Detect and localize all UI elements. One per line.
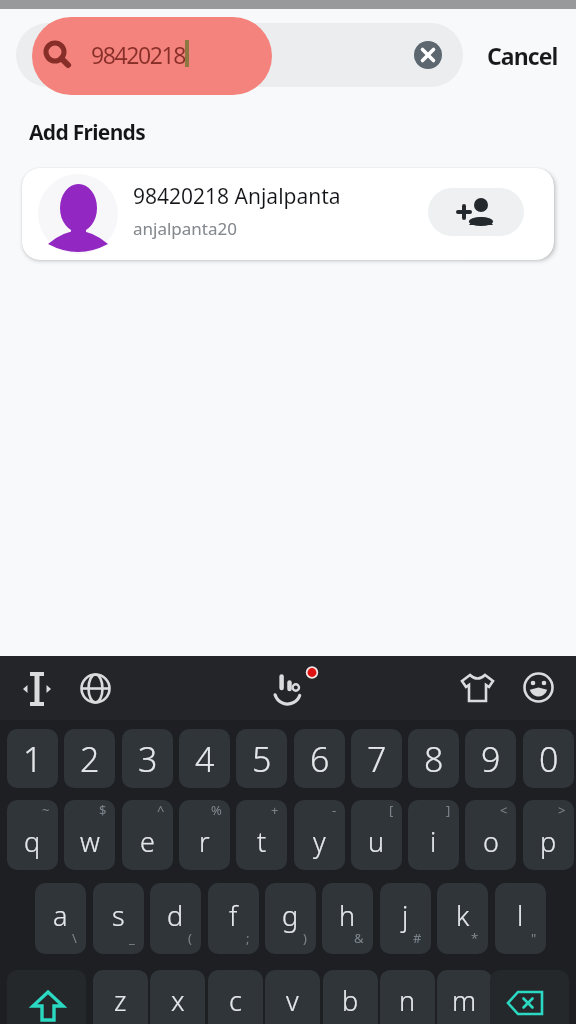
button[interactable]: 1 xyxy=(7,729,58,788)
button[interactable]: h xyxy=(322,883,373,954)
staticText: i xyxy=(430,823,437,860)
staticText: ] xyxy=(446,801,451,819)
button[interactable]: i xyxy=(408,800,459,870)
button[interactable]: 98420218 Anjalpanta xyxy=(22,168,554,260)
button[interactable]: f xyxy=(208,883,259,954)
button[interactable]: 6 xyxy=(294,729,345,788)
staticText: $ xyxy=(99,801,107,819)
button[interactable]: 0 xyxy=(523,729,574,788)
staticText: z xyxy=(114,982,127,1019)
staticText: % xyxy=(211,801,222,819)
button[interactable] xyxy=(490,970,569,1024)
button[interactable] xyxy=(16,23,463,87)
staticText: # xyxy=(413,929,422,947)
staticText: x xyxy=(171,982,185,1019)
button[interactable]: 4 xyxy=(179,729,230,788)
staticText: ~ xyxy=(42,801,50,819)
staticText: 7 xyxy=(367,736,387,782)
button[interactable]: x xyxy=(150,970,205,1024)
staticText: Cancel xyxy=(487,40,558,71)
staticText: m xyxy=(452,982,477,1019)
staticText: o xyxy=(483,823,499,860)
staticText: 5 xyxy=(252,736,272,782)
staticText: anjalpanta20 xyxy=(133,217,237,240)
button[interactable]: o xyxy=(465,800,516,870)
staticText: 98420218 Anjalpanta xyxy=(133,182,341,211)
button[interactable]: j xyxy=(380,883,431,954)
button[interactable]: m xyxy=(437,970,492,1024)
staticText: 1 xyxy=(23,736,43,782)
staticText: n xyxy=(399,982,416,1019)
button[interactable] xyxy=(461,673,494,703)
staticText: d xyxy=(167,897,184,934)
button[interactable]: r xyxy=(179,800,230,870)
button[interactable]: z xyxy=(93,970,148,1024)
staticText: 2 xyxy=(80,736,100,782)
staticText: g xyxy=(282,897,299,934)
button[interactable]: a xyxy=(35,883,86,954)
staticText: Add Friends xyxy=(29,118,146,147)
button[interactable]: 3 xyxy=(122,729,173,788)
button[interactable] xyxy=(428,188,524,236)
staticText: h xyxy=(339,897,356,934)
staticText: 4 xyxy=(195,736,215,782)
button[interactable]: s xyxy=(93,883,144,954)
button[interactable] xyxy=(7,970,86,1024)
button[interactable] xyxy=(262,660,320,708)
staticText: < xyxy=(500,801,508,819)
button[interactable] xyxy=(414,41,442,69)
button[interactable]: t xyxy=(236,800,287,870)
staticText: e xyxy=(140,823,155,860)
button[interactable]: l xyxy=(495,883,546,954)
button[interactable]: 9 xyxy=(465,729,516,788)
staticText: [ xyxy=(389,801,394,819)
staticText: 98420218 xyxy=(91,39,186,70)
button[interactable]: 7 xyxy=(351,729,402,788)
staticText: w xyxy=(80,823,100,860)
staticText: ; xyxy=(246,929,250,947)
staticText: " xyxy=(531,929,537,947)
staticText: > xyxy=(558,801,566,819)
button[interactable] xyxy=(523,672,554,703)
staticText: y xyxy=(313,823,326,860)
button[interactable]: 2 xyxy=(64,729,115,788)
button[interactable]: d xyxy=(150,883,201,954)
staticText: c xyxy=(229,982,242,1019)
staticText: _ xyxy=(129,929,135,947)
staticText: j xyxy=(402,897,409,934)
staticText: b xyxy=(342,982,359,1019)
staticText: \ xyxy=(72,929,77,947)
staticText: + xyxy=(271,801,279,819)
staticText: a xyxy=(53,897,68,934)
button[interactable]: q xyxy=(7,800,58,870)
button[interactable]: e xyxy=(122,800,173,870)
button[interactable]: w xyxy=(64,800,115,870)
button[interactable]: c xyxy=(208,970,263,1024)
staticText: q xyxy=(24,823,41,860)
button[interactable]: 8 xyxy=(408,729,459,788)
staticText: p xyxy=(540,823,557,860)
button[interactable] xyxy=(18,671,56,707)
button[interactable]: k xyxy=(437,883,488,954)
staticText: * xyxy=(471,929,479,947)
button[interactable]: b xyxy=(323,970,378,1024)
button[interactable]: u xyxy=(351,800,402,870)
button[interactable]: y xyxy=(294,800,345,870)
button[interactable] xyxy=(79,672,112,705)
staticText: 3 xyxy=(138,736,158,782)
button[interactable]: g xyxy=(265,883,316,954)
button[interactable]: p xyxy=(523,800,574,870)
button[interactable]: v xyxy=(265,970,320,1024)
staticText: s xyxy=(112,897,125,934)
staticText: 6 xyxy=(310,736,330,782)
staticText: t xyxy=(257,823,267,860)
button[interactable]: 5 xyxy=(236,729,287,788)
staticText: r xyxy=(199,823,210,860)
staticText: - xyxy=(332,801,337,819)
button[interactable]: Cancel xyxy=(480,36,564,74)
staticText: ^ xyxy=(157,801,165,819)
staticText: 9 xyxy=(481,736,501,782)
staticText: k xyxy=(456,897,470,934)
button[interactable]: n xyxy=(380,970,435,1024)
staticText: ( xyxy=(188,929,192,947)
